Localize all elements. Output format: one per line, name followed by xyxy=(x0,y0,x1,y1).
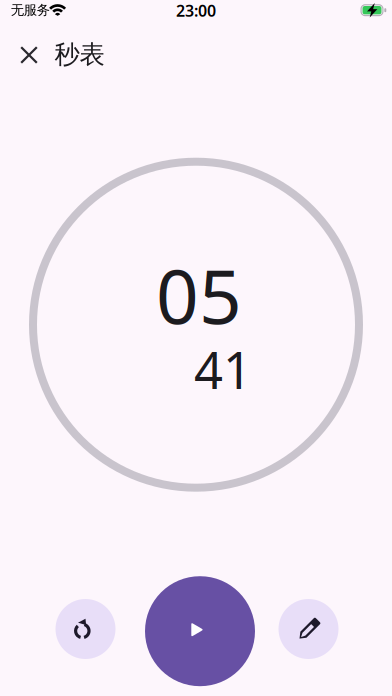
staticText: 41 xyxy=(194,336,252,403)
button[interactable] xyxy=(55,599,115,659)
staticText: 05 xyxy=(156,245,242,344)
staticText: 23:00 xyxy=(176,0,216,21)
staticText: 无服务 xyxy=(11,2,50,18)
button[interactable] xyxy=(278,599,338,659)
button[interactable] xyxy=(145,576,255,686)
button[interactable] xyxy=(7,33,51,77)
staticText: 秒表 xyxy=(54,39,104,70)
